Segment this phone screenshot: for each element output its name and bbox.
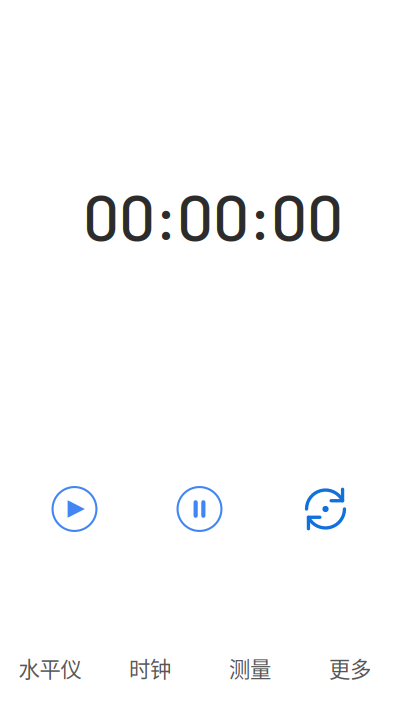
staticText: 时钟 xyxy=(129,653,171,683)
button[interactable]: Reset xyxy=(288,477,362,541)
staticText: 水平仪 xyxy=(18,653,81,683)
staticText: 更多 xyxy=(329,653,371,683)
button[interactable]: 更多 xyxy=(300,646,400,690)
button[interactable]: 时钟 xyxy=(100,646,200,690)
button[interactable]: Pause xyxy=(162,477,236,541)
staticText: 00:00:00 xyxy=(83,177,343,254)
button[interactable]: Start xyxy=(37,477,111,541)
button[interactable]: 水平仪 xyxy=(0,646,100,690)
staticText: 测量 xyxy=(229,653,271,683)
button[interactable]: 测量 xyxy=(200,646,300,690)
